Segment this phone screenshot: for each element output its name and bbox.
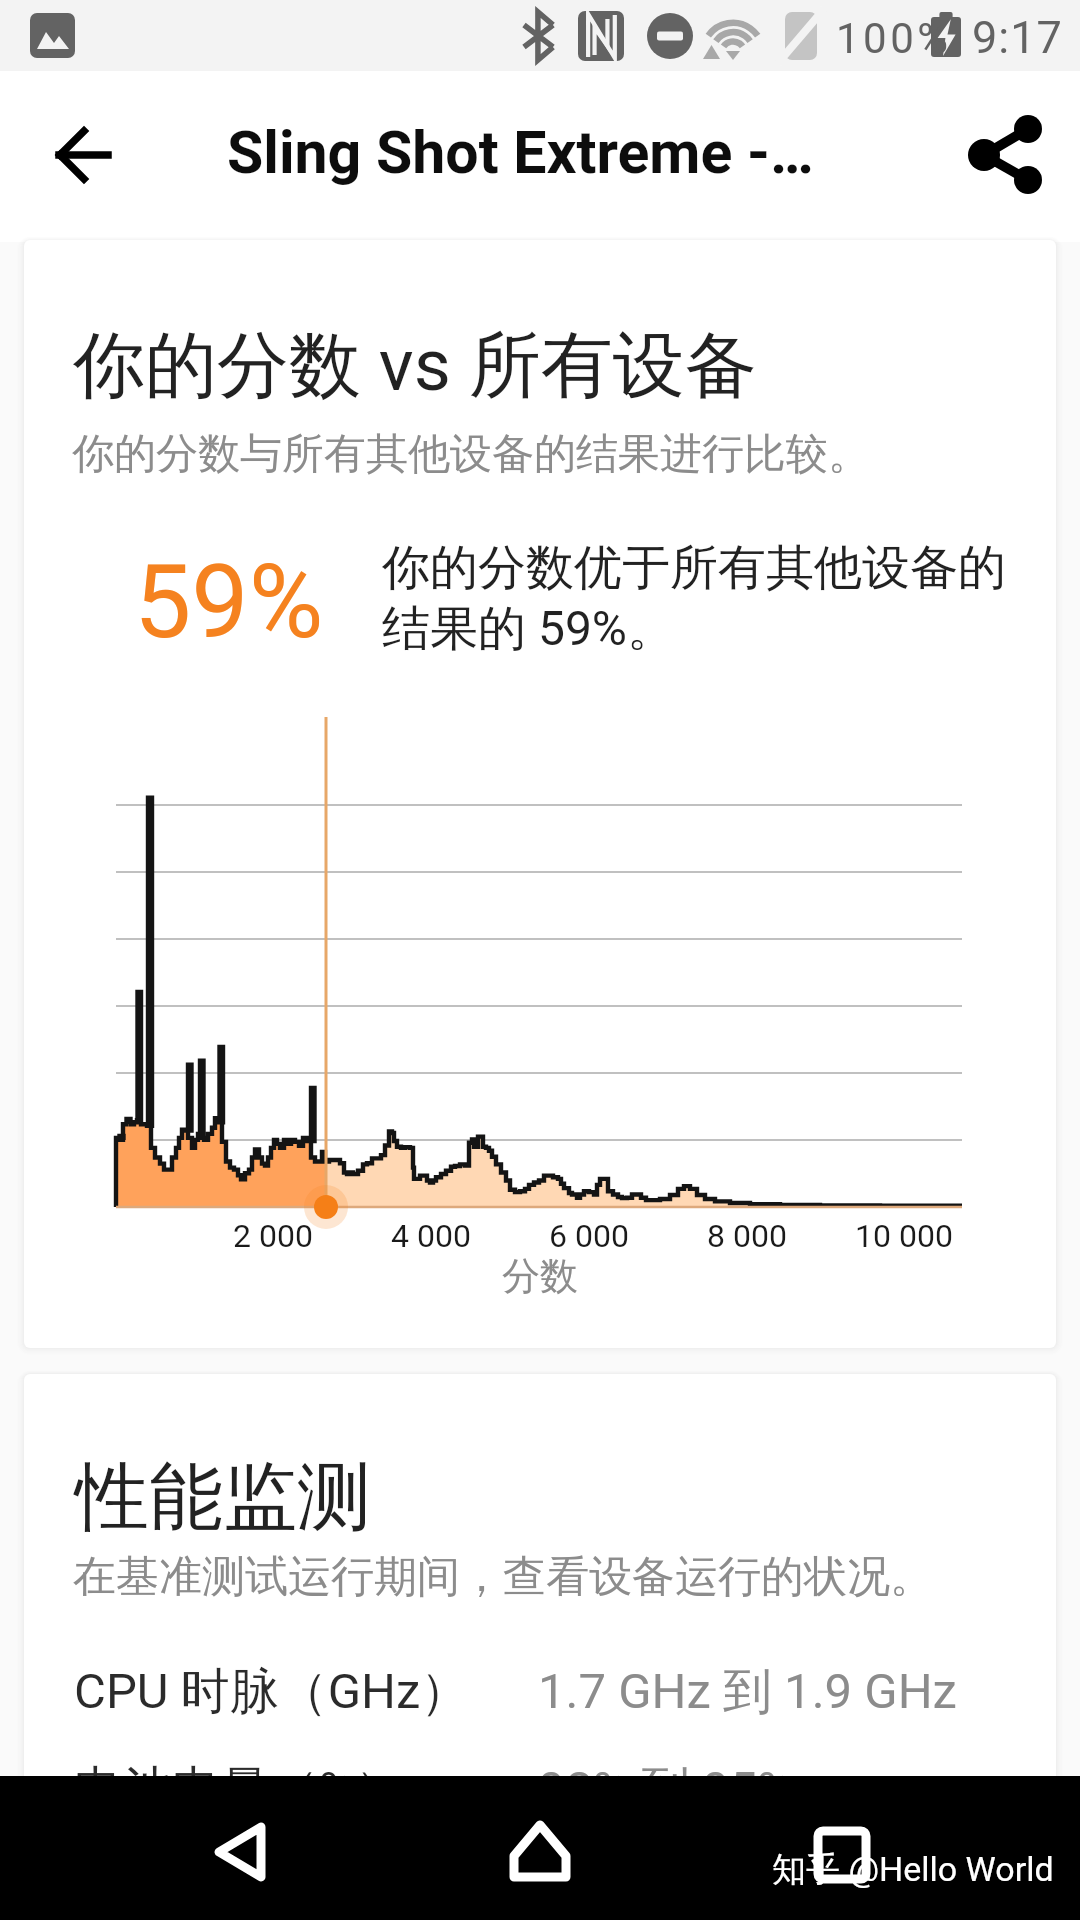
staticText: Sling Shot Extreme -…: [227, 118, 814, 187]
button[interactable]: Back: [192, 1804, 288, 1900]
staticText: 你的分数 vs 所有设备: [73, 321, 757, 412]
staticText: 4 000: [331, 1217, 531, 1255]
staticText: 98% 到 95%: [538, 1759, 794, 1821]
staticText: 1.7 GHz 到 1.9 GHz: [538, 1661, 957, 1723]
staticText: 你的分数优于所有其他设备的 结果的 59%。: [382, 538, 1006, 659]
staticText: 性能监测: [75, 1451, 371, 1544]
button[interactable]: Recents: [793, 1804, 889, 1900]
button[interactable]: Home: [492, 1804, 588, 1900]
button[interactable]: Back: [36, 107, 132, 203]
staticText: 100%: [836, 14, 952, 63]
staticText: 知乎 @Hello World: [772, 1848, 1054, 1891]
staticText: CPU 时脉（GHz）: [74, 1661, 470, 1723]
staticText: 分数: [24, 1252, 1056, 1300]
staticText: 8 000: [647, 1217, 847, 1255]
staticText: 在基准测试运行期间，查看设备运行的状况。: [73, 1550, 933, 1604]
staticText: 10 000: [804, 1217, 1004, 1255]
staticText: 2 000: [173, 1217, 373, 1255]
staticText: 9:17: [972, 11, 1063, 64]
staticText: 你的分数与所有其他设备的结果进行比较。: [72, 428, 870, 481]
button[interactable]: Share: [957, 107, 1053, 203]
staticText: 59%: [134, 542, 324, 662]
staticText: 电池电量（%）: [74, 1759, 404, 1821]
staticText: 6 000: [489, 1217, 689, 1255]
